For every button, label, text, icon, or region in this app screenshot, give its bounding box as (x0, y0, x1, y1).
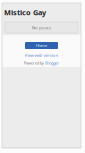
staticText: No posts (32, 25, 51, 30)
button[interactable]: Home (25, 42, 58, 49)
staticText: Mistico Gay (4, 7, 46, 17)
button[interactable]: View web version (24, 52, 58, 58)
staticText: Home (36, 43, 47, 48)
staticText: Blogger (45, 60, 59, 66)
button[interactable]: Blogger (45, 60, 59, 66)
staticText: Powered by (24, 60, 44, 66)
staticText: View web version (24, 52, 58, 58)
